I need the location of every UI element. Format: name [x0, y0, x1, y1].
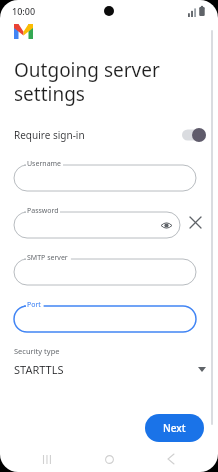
staticText: Security type	[14, 346, 60, 356]
button[interactable]: Require sign-in toggle	[182, 128, 206, 142]
button[interactable]: Password	[14, 206, 180, 238]
staticText: Username	[27, 159, 62, 169]
button[interactable]: Home	[94, 446, 124, 472]
button[interactable]: Back	[156, 446, 186, 472]
staticText: Next	[163, 421, 186, 435]
button[interactable]: Username	[14, 159, 196, 191]
staticText: SMTP server	[27, 253, 68, 263]
button[interactable]: SMTP server	[14, 253, 196, 285]
button[interactable]: Require sign-in	[0, 122, 218, 148]
staticText: 10:00	[12, 5, 36, 17]
button[interactable]: Security type	[0, 346, 218, 377]
staticText: Require sign-in	[14, 128, 85, 142]
staticText: Outgoing server settings	[14, 57, 160, 106]
button[interactable]: Clear password	[185, 212, 205, 232]
staticText: Port	[27, 300, 41, 310]
button[interactable]: Recents	[32, 446, 62, 472]
button[interactable]: Port	[14, 300, 196, 332]
button[interactable]: Show password	[158, 217, 174, 233]
button[interactable]: Next	[145, 414, 204, 442]
staticText: STARTTLS	[14, 362, 64, 377]
staticText: Password	[27, 206, 59, 216]
